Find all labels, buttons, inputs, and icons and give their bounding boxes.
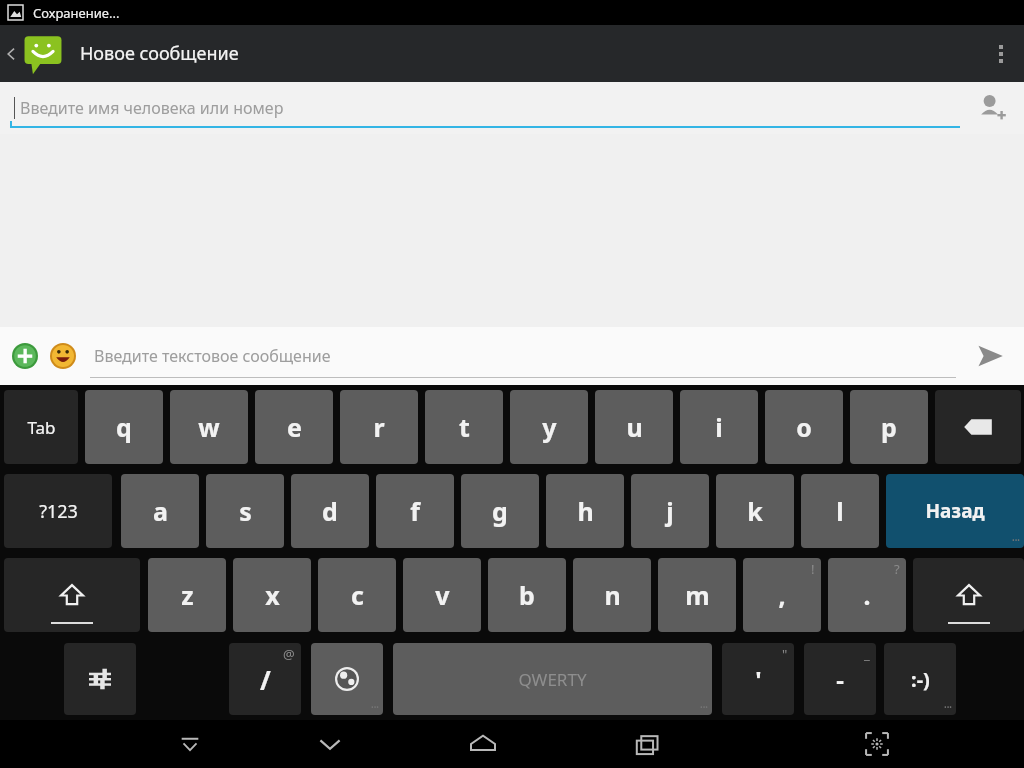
button[interactable]: n [573,558,651,632]
staticText: Сохранение... [33,4,120,22]
button[interactable]: Back [260,720,400,768]
staticText: y [542,410,557,444]
button[interactable]: Space [393,643,712,715]
staticText: . [863,578,871,612]
button[interactable]: More options [978,25,1024,82]
button[interactable]: / [229,643,301,715]
button[interactable]: t [425,390,503,464]
button[interactable]: o [765,390,843,464]
staticText: @ [283,645,295,663]
button[interactable]: f [376,474,454,548]
button[interactable]: Введите текстовое сообщение [90,327,956,385]
staticText: " [782,645,788,663]
staticText: f [410,494,420,528]
button[interactable]: Recents [565,720,730,768]
button[interactable]: Emoji [48,341,78,371]
button[interactable]: Screenshot [730,720,1024,768]
staticText: / [260,662,271,697]
button[interactable]: Add contact [960,82,1024,134]
button[interactable]: ?123 [4,474,112,548]
button[interactable]: z [148,558,226,632]
staticText: z [181,578,194,612]
button[interactable]: Home [400,720,565,768]
button[interactable]: Settings [64,643,136,715]
staticText: ••• [371,703,379,713]
staticText: ! [811,560,815,578]
button[interactable]: Change language [311,643,383,715]
button[interactable]: s [206,474,284,548]
button[interactable]: ' [722,643,794,715]
staticText: p [881,410,897,444]
button[interactable]: . [828,558,906,632]
button[interactable]: , [743,558,821,632]
button[interactable]: u [595,390,673,464]
staticText: c [351,578,364,612]
button[interactable]: e [255,390,333,464]
staticText: Назад [925,498,985,524]
button[interactable]: q [85,390,163,464]
button[interactable]: Hide keyboard [120,720,260,768]
button[interactable]: Введите имя человека или номер [0,82,960,134]
button[interactable]: l [801,474,879,548]
button[interactable]: - [804,643,876,715]
button[interactable]: k [716,474,794,548]
staticText: Новое сообщение [80,41,239,66]
button[interactable]: r [340,390,418,464]
staticText: u [626,410,643,444]
staticText: e [287,410,302,444]
button[interactable]: :-) [884,643,956,715]
button[interactable]: v [403,558,481,632]
staticText: m [685,578,710,612]
staticText: j [666,494,674,528]
button[interactable]: a [121,474,199,548]
staticText: l [836,494,844,528]
button[interactable]: h [546,474,624,548]
staticText: n [604,578,621,612]
staticText: w [198,410,220,444]
button[interactable]: m [658,558,736,632]
staticText: h [577,494,594,528]
staticText: QWERTY [518,668,587,691]
button[interactable]: Up [0,25,68,82]
button[interactable]: y [510,390,588,464]
button[interactable]: d [291,474,369,548]
button[interactable]: j [631,474,709,548]
button[interactable]: i [680,390,758,464]
staticText: Введите имя человека или номер [20,97,284,119]
button[interactable]: Shift [4,558,140,632]
button[interactable]: Назад [886,474,1024,548]
staticText: i [715,410,723,444]
button[interactable]: g [461,474,539,548]
button[interactable]: p [850,390,928,464]
staticText: _ [864,645,870,663]
staticText: ?123 [39,499,78,524]
button[interactable]: w [170,390,248,464]
staticText: t [459,410,470,444]
staticText: o [796,410,812,444]
staticText: s [239,494,252,528]
button[interactable]: Tab [4,390,78,464]
staticText: q [116,410,132,444]
button[interactable]: x [233,558,311,632]
button[interactable]: Attach [10,341,40,371]
staticText: g [492,494,508,528]
button[interactable]: Backspace [935,390,1021,464]
button[interactable]: c [318,558,396,632]
staticText: Tab [27,416,56,439]
button[interactable]: Send [956,327,1024,385]
staticText: , [778,578,786,612]
staticText: ••• [700,703,708,713]
button[interactable]: b [488,558,566,632]
staticText: a [153,494,168,528]
staticText: - [836,663,844,696]
staticText: ' [755,663,762,696]
staticText: r [373,410,385,444]
staticText: d [322,494,338,528]
staticText: ? [894,560,900,578]
staticText: Введите текстовое сообщение [94,345,331,367]
staticText: ••• [1012,536,1020,546]
button[interactable]: Shift [913,558,1024,632]
staticText: ••• [944,703,952,713]
staticText: b [519,578,535,612]
staticText: x [265,578,280,612]
